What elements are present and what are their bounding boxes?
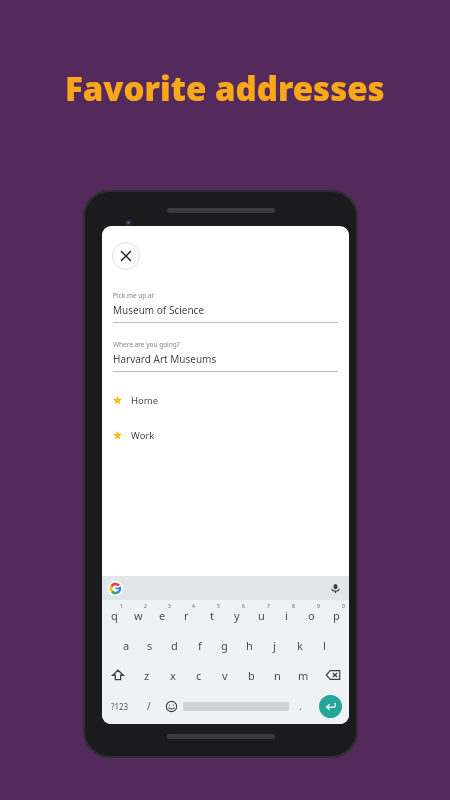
staticText: u <box>258 608 265 623</box>
button[interactable]: n <box>264 660 290 690</box>
staticText: / <box>147 699 151 713</box>
button[interactable]: Space <box>183 698 289 714</box>
staticText: t <box>210 608 214 623</box>
button[interactable]: m <box>290 660 316 690</box>
staticText: w <box>134 608 143 623</box>
staticText: Pick me up at <box>113 291 155 300</box>
staticText: 4 <box>192 603 195 610</box>
button[interactable]: r <box>174 600 199 630</box>
staticText: p <box>333 608 340 623</box>
staticText: Museum of Science <box>113 303 205 317</box>
staticText: Harvard Art Museums <box>113 352 217 366</box>
button[interactable]: t <box>199 600 224 630</box>
staticText: d <box>171 638 178 653</box>
staticText: m <box>298 668 309 683</box>
staticText: f <box>198 638 202 653</box>
button[interactable]: Google <box>108 581 123 596</box>
button[interactable]: h <box>237 630 262 660</box>
button[interactable]: Close <box>112 242 140 270</box>
button[interactable]: i <box>274 600 299 630</box>
button[interactable]: g <box>212 630 237 660</box>
button[interactable]: c <box>186 660 212 690</box>
button[interactable]: k <box>287 630 312 660</box>
staticText: v <box>222 668 228 683</box>
staticText: 7 <box>267 603 270 610</box>
staticText: 5 <box>217 603 220 610</box>
button[interactable]: w <box>126 600 150 630</box>
staticText: y <box>234 608 240 623</box>
button[interactable]: d <box>162 630 187 660</box>
staticText: n <box>274 668 281 683</box>
staticText: j <box>273 638 276 653</box>
staticText: 3 <box>168 603 171 610</box>
staticText: g <box>221 638 228 653</box>
staticText: 6 <box>242 603 245 610</box>
staticText: Where are you going? <box>113 340 180 349</box>
button[interactable]: . <box>289 690 312 722</box>
staticText: Favorite addresses <box>65 66 385 111</box>
staticText: . <box>299 699 302 713</box>
button[interactable]: l <box>312 630 337 660</box>
button[interactable]: Where are you going? <box>113 340 338 372</box>
staticText: q <box>111 608 118 623</box>
staticText: r <box>184 608 189 623</box>
staticText: k <box>297 638 303 653</box>
button[interactable]: u <box>249 600 274 630</box>
button[interactable]: Shift <box>102 660 134 690</box>
button[interactable]: Voice input <box>330 583 341 594</box>
button[interactable]: a <box>114 630 138 660</box>
staticText: a <box>123 638 130 653</box>
button[interactable]: Backspace <box>316 660 349 690</box>
staticText: i <box>285 608 288 623</box>
staticText: Home <box>131 394 159 407</box>
button[interactable]: ?123 <box>102 690 137 722</box>
staticText: e <box>159 608 166 623</box>
staticText: z <box>144 668 150 683</box>
button[interactable]: y <box>224 600 249 630</box>
staticText: l <box>323 638 326 653</box>
button[interactable]: s <box>138 630 162 660</box>
button[interactable]: v <box>212 660 238 690</box>
button[interactable]: / <box>137 690 160 722</box>
button[interactable]: z <box>134 660 160 690</box>
staticText: 0 <box>342 603 345 610</box>
staticText: 8 <box>292 603 295 610</box>
button[interactable]: j <box>262 630 287 660</box>
button[interactable]: b <box>238 660 264 690</box>
staticText: 9 <box>317 603 320 610</box>
staticText: 2 <box>144 603 147 610</box>
staticText: Work <box>131 429 155 442</box>
button[interactable]: o <box>299 600 324 630</box>
button[interactable]: q <box>102 600 126 630</box>
staticText: x <box>170 668 176 683</box>
staticText: o <box>308 608 315 623</box>
staticText: b <box>248 668 255 683</box>
button[interactable]: e <box>150 600 174 630</box>
button[interactable]: Work <box>113 429 338 442</box>
staticText: ?123 <box>111 701 129 712</box>
button[interactable]: x <box>160 660 186 690</box>
button[interactable]: Emoji <box>160 690 183 722</box>
staticText: h <box>246 638 253 653</box>
button[interactable]: p <box>324 600 349 630</box>
button[interactable]: Enter <box>312 690 349 722</box>
staticText: s <box>147 638 153 653</box>
staticText: c <box>196 668 202 683</box>
button[interactable]: Home <box>113 394 338 407</box>
button[interactable]: f <box>187 630 212 660</box>
staticText: 1 <box>120 603 123 610</box>
button[interactable]: Pick me up at <box>113 291 338 323</box>
